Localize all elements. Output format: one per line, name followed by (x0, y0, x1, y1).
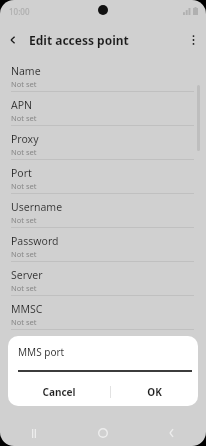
staticText: Username (11, 200, 63, 214)
staticText: Not set (11, 351, 37, 361)
button[interactable]: OK (111, 380, 198, 404)
staticText: OK (147, 385, 162, 399)
button[interactable]: Back (137, 420, 206, 446)
staticText: Not set (11, 283, 37, 293)
button[interactable]: Server (0, 262, 206, 295)
button[interactable]: More options (180, 27, 206, 53)
staticText: Not set (11, 249, 37, 259)
button[interactable]: MMS proxy (0, 330, 206, 363)
button[interactable]: Proxy (0, 126, 206, 159)
staticText: Password (11, 234, 59, 248)
staticText: Not set (11, 79, 37, 89)
staticText: APN (11, 98, 33, 112)
button[interactable]: Port (0, 160, 206, 193)
button[interactable]: Name (0, 58, 206, 91)
staticText: Not set (11, 181, 37, 191)
staticText: MMS port (18, 345, 65, 359)
staticText: Proxy (11, 132, 39, 146)
staticText: Port (11, 166, 32, 180)
staticText: MMS proxy (11, 336, 67, 350)
button[interactable]: Cancel (8, 380, 110, 404)
button[interactable]: Home (68, 420, 137, 446)
staticText: Not set (11, 215, 37, 225)
staticText: Edit access point (29, 32, 129, 48)
staticText: MMSC (11, 302, 43, 316)
staticText: Not set (11, 147, 37, 157)
staticText: Not set (11, 113, 37, 123)
staticText: Not set (11, 317, 37, 327)
staticText: Cancel (42, 385, 76, 399)
button[interactable]: Password (0, 228, 206, 261)
button[interactable]: Recent apps (0, 420, 68, 446)
button[interactable]: Username (0, 194, 206, 227)
staticText: Name (11, 64, 41, 78)
staticText: 10:00 (9, 6, 30, 17)
button[interactable]: APN (0, 92, 206, 125)
button[interactable]: Navigate up (0, 27, 26, 53)
staticText: Server (11, 268, 43, 282)
button[interactable]: MMSC (0, 296, 206, 329)
